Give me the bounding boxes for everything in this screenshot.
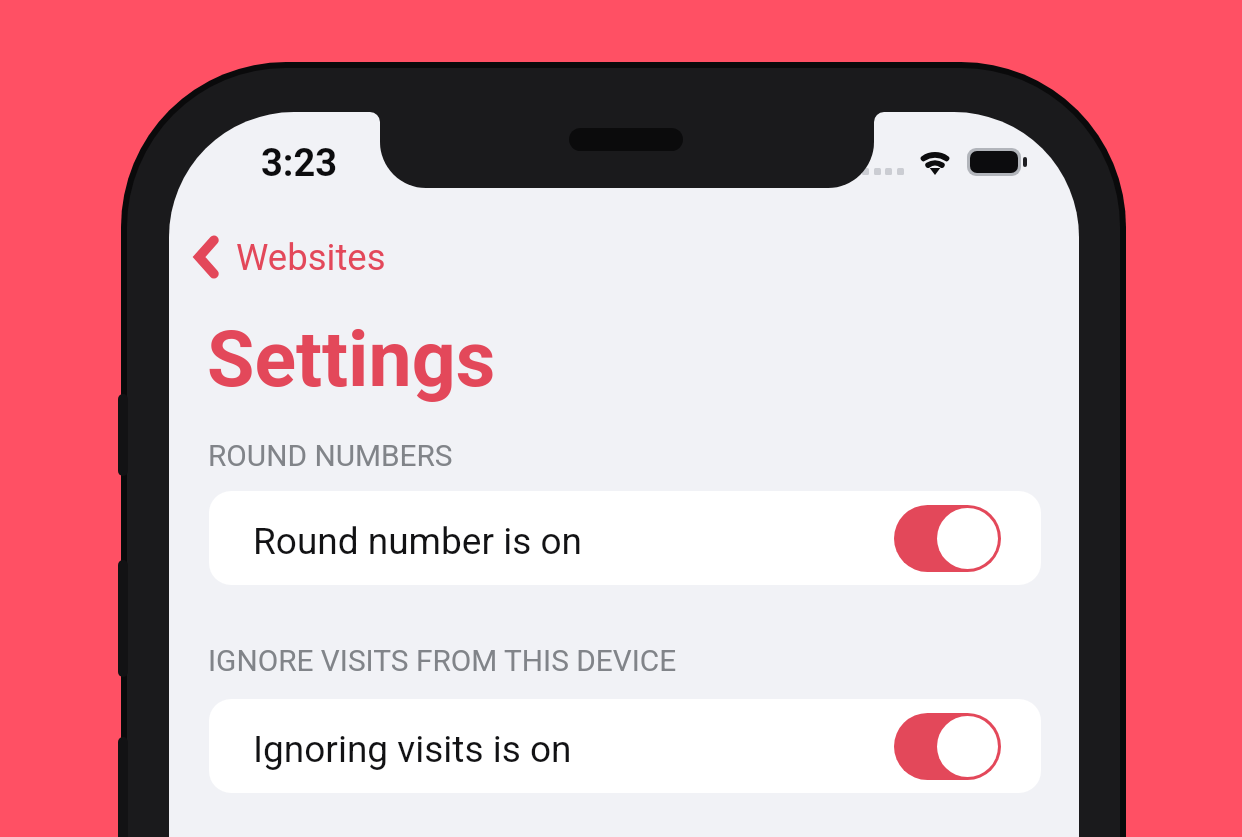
- other: Back: [194, 236, 219, 278]
- staticText: ROUND NUMBERS: [208, 438, 453, 473]
- staticText: Round number is on: [253, 520, 582, 563]
- staticText: Settings: [207, 315, 496, 405]
- button[interactable]: Toggle on: [894, 505, 1001, 572]
- button[interactable]: Back: [194, 233, 386, 281]
- button[interactable]: Round number is on: [209, 491, 1041, 585]
- staticText: Ignoring visits is on: [253, 728, 572, 771]
- staticText: 3:23: [261, 141, 338, 186]
- staticText: Websites: [236, 236, 386, 279]
- button[interactable]: Ignoring visits is on: [209, 699, 1041, 793]
- button[interactable]: Toggle on: [894, 713, 1001, 780]
- staticText: IGNORE VISITS FROM THIS DEVICE: [208, 643, 677, 678]
